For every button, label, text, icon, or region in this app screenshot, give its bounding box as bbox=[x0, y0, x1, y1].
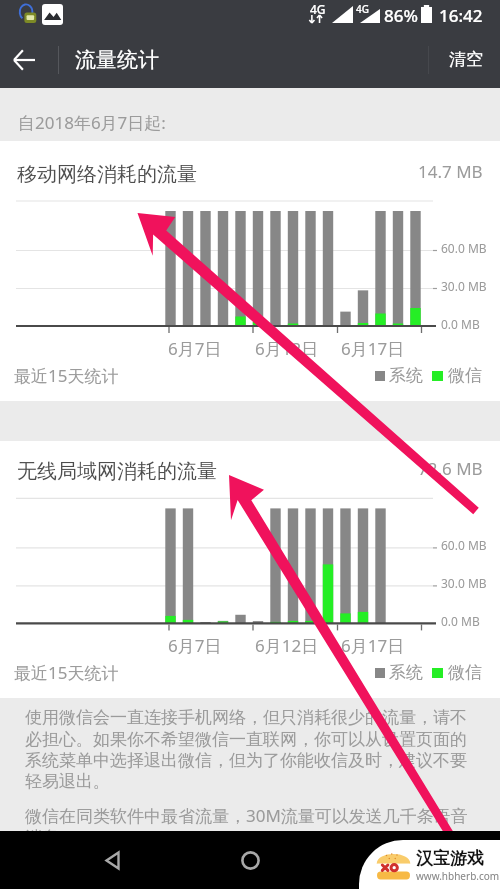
button[interactable]: Back bbox=[88, 836, 136, 884]
staticText: 4G bbox=[356, 2, 369, 16]
staticText: 16:42 bbox=[439, 4, 483, 27]
staticText: 0.0 MB bbox=[441, 613, 480, 629]
button[interactable]: Back bbox=[0, 36, 48, 84]
staticText: 0.0 MB bbox=[441, 316, 480, 332]
staticText: 4G bbox=[310, 1, 326, 17]
staticText: 使用微信会一直连接手机网络，但只消耗很少的流量，请不必担心。如果你不希望微信一直… bbox=[25, 707, 480, 792]
staticText: 72.6 MB bbox=[418, 457, 483, 480]
staticText: 6月12日 bbox=[255, 337, 319, 360]
staticText: 微信在同类软件中最省流量，30M流量可以发送几千条语音消息。 bbox=[25, 804, 480, 831]
staticText: 自2018年6月7日起: bbox=[18, 111, 166, 134]
staticText: 6月17日 bbox=[341, 634, 405, 657]
staticText: 汉宝游戏 bbox=[416, 848, 484, 869]
staticText: 86% bbox=[384, 4, 418, 27]
button[interactable]: Recents bbox=[364, 836, 412, 884]
button[interactable]: 清空 bbox=[432, 31, 500, 88]
staticText: 微信 bbox=[448, 365, 482, 386]
button[interactable]: Home bbox=[226, 836, 274, 884]
staticText: 最近15天统计 bbox=[14, 364, 119, 387]
staticText: 系统 bbox=[389, 365, 423, 386]
staticText: 清空 bbox=[449, 49, 483, 70]
staticText: 无线局域网消耗的流量 bbox=[17, 459, 217, 484]
staticText: 6月12日 bbox=[255, 634, 319, 657]
staticText: 30.0 MB bbox=[441, 278, 487, 294]
staticText: 60.0 MB bbox=[441, 537, 487, 553]
staticText: 最近15天统计 bbox=[14, 661, 119, 684]
staticText: 60.0 MB bbox=[441, 240, 487, 256]
staticText: 移动网络消耗的流量 bbox=[17, 162, 197, 187]
staticText: 流量统计 bbox=[75, 47, 159, 73]
staticText: 6月7日 bbox=[168, 634, 222, 657]
staticText: 系统 bbox=[389, 662, 423, 683]
staticText: 30.0 MB bbox=[441, 575, 487, 591]
staticText: 6月17日 bbox=[341, 337, 405, 360]
staticText: 14.7 MB bbox=[418, 160, 483, 183]
staticText: www.hbherb.com bbox=[416, 869, 500, 883]
staticText: 微信 bbox=[448, 662, 482, 683]
staticText: 6月7日 bbox=[168, 337, 222, 360]
